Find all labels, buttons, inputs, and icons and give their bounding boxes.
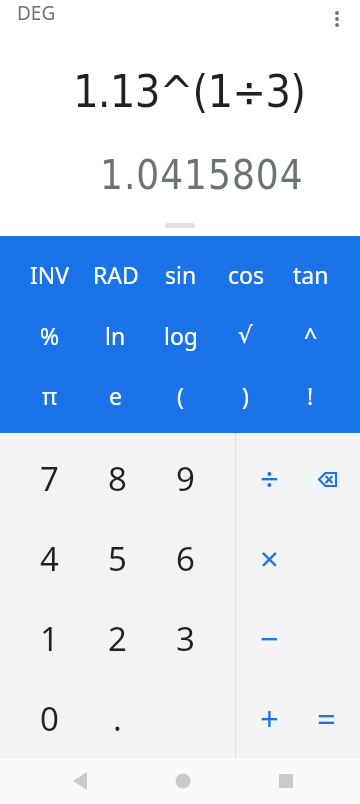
button[interactable]: DEG bbox=[11, 0, 62, 30]
button[interactable]: − bbox=[241, 598, 298, 678]
button[interactable]: 6 bbox=[151, 518, 219, 598]
staticText: 1.0415804 bbox=[100, 152, 304, 199]
staticText: 1 bbox=[40, 616, 59, 661]
button[interactable]: + bbox=[241, 678, 298, 758]
staticText: log bbox=[164, 320, 198, 351]
button[interactable]: tan bbox=[278, 244, 343, 305]
staticText: ln bbox=[105, 320, 126, 351]
button[interactable]: More options bbox=[320, 2, 354, 36]
staticText: cos bbox=[228, 259, 264, 290]
staticText: sin bbox=[165, 259, 197, 290]
button[interactable]: % bbox=[17, 305, 83, 365]
button[interactable]: 9 bbox=[151, 439, 219, 518]
staticText: 6 bbox=[176, 536, 195, 581]
button[interactable]: 4 bbox=[16, 518, 83, 598]
button[interactable]: ÷ bbox=[241, 439, 298, 518]
staticText: × bbox=[260, 536, 279, 581]
staticText: + bbox=[260, 696, 279, 741]
staticText: 5 bbox=[108, 536, 127, 581]
button[interactable]: cos bbox=[213, 244, 278, 305]
button[interactable]: ( bbox=[148, 365, 213, 425]
button[interactable]: sin bbox=[148, 244, 213, 305]
button[interactable]: ln bbox=[83, 305, 148, 365]
button[interactable]: 3 bbox=[151, 598, 219, 678]
staticText: 2 bbox=[108, 616, 127, 661]
button[interactable]: INV bbox=[17, 244, 83, 305]
staticText: INV bbox=[30, 259, 70, 290]
staticText: 3 bbox=[176, 616, 195, 661]
button[interactable]: 5 bbox=[83, 518, 151, 598]
staticText: − bbox=[260, 616, 279, 661]
staticText: ! bbox=[307, 380, 314, 411]
staticText: . bbox=[113, 696, 122, 741]
staticText: 8 bbox=[108, 456, 127, 501]
button[interactable]: 2 bbox=[83, 598, 151, 678]
button[interactable]: 1 bbox=[16, 598, 83, 678]
button[interactable]: log bbox=[148, 305, 213, 365]
button[interactable]: ! bbox=[278, 365, 343, 425]
button[interactable]: ^ bbox=[278, 305, 343, 365]
button[interactable]: 0 bbox=[16, 678, 83, 758]
staticText: DEG bbox=[17, 0, 56, 26]
staticText: 4 bbox=[40, 536, 59, 581]
button[interactable]: 8 bbox=[83, 439, 151, 518]
button[interactable]: √ bbox=[213, 305, 278, 365]
staticText: 1.13^(1÷3) bbox=[73, 65, 306, 117]
staticText: ^ bbox=[304, 320, 318, 351]
button[interactable]: RAD bbox=[83, 244, 148, 305]
button[interactable]: π bbox=[17, 365, 83, 425]
button[interactable]: × bbox=[241, 518, 298, 598]
staticText: √ bbox=[238, 322, 253, 349]
button[interactable]: Backspace bbox=[298, 439, 355, 518]
other: Backspace bbox=[312, 464, 342, 494]
staticText: 7 bbox=[40, 456, 59, 501]
button[interactable]: 7 bbox=[16, 439, 83, 518]
staticText: 9 bbox=[176, 456, 195, 501]
staticText: π bbox=[42, 380, 58, 411]
staticText: tan bbox=[293, 259, 329, 290]
button[interactable]: ) bbox=[213, 365, 278, 425]
staticText: = bbox=[317, 696, 336, 741]
staticText: RAD bbox=[93, 259, 139, 290]
staticText: ( bbox=[177, 380, 184, 411]
staticText: ) bbox=[242, 380, 249, 411]
staticText: e bbox=[109, 380, 122, 411]
staticText: % bbox=[40, 320, 60, 351]
button[interactable]: e bbox=[83, 365, 148, 425]
staticText: ÷ bbox=[260, 456, 279, 501]
button[interactable]: = bbox=[298, 678, 355, 758]
button[interactable]: . bbox=[83, 678, 151, 758]
staticText: 0 bbox=[40, 696, 59, 741]
